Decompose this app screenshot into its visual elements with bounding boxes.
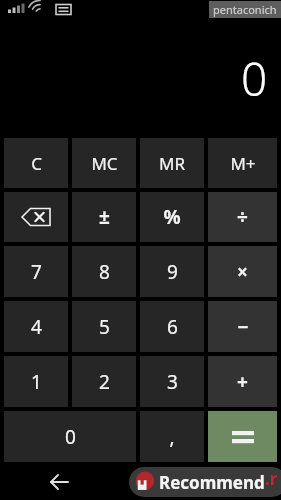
staticText: C	[31, 152, 42, 175]
button[interactable]: Backspace	[4, 192, 68, 242]
staticText: Recommend	[159, 471, 265, 494]
staticText: MC	[91, 152, 118, 175]
staticText: 6	[167, 314, 178, 340]
staticText: MR	[159, 152, 185, 175]
button[interactable]: MC	[72, 138, 136, 188]
staticText: M+	[230, 152, 256, 175]
staticText: −	[237, 314, 249, 340]
button[interactable]: ±	[72, 192, 136, 242]
button[interactable]: 2	[72, 356, 136, 407]
button[interactable]: 3	[140, 356, 204, 407]
button[interactable]: +	[208, 356, 277, 407]
button[interactable]: M+	[208, 138, 277, 188]
button[interactable]: 1	[4, 356, 68, 407]
button[interactable]: C	[4, 138, 68, 188]
staticText: 4	[31, 314, 42, 340]
staticText: 0	[241, 47, 268, 110]
button[interactable]: 5	[72, 301, 136, 352]
button[interactable]: MR	[140, 138, 204, 188]
button[interactable]: 4	[4, 301, 68, 352]
staticText: ±	[99, 204, 110, 230]
staticText: 7	[31, 259, 42, 285]
staticText: 3	[167, 369, 178, 395]
button[interactable]: 0	[4, 411, 136, 462]
button[interactable]: Back	[42, 465, 76, 499]
staticText: %	[163, 204, 181, 230]
button[interactable]: −	[208, 301, 277, 352]
staticText: ×	[237, 259, 248, 285]
staticText: 0	[65, 424, 76, 450]
staticText: .ru	[265, 467, 281, 497]
staticText: 9	[167, 259, 178, 285]
staticText: pentaconich	[213, 2, 277, 17]
staticText: 5	[99, 314, 110, 340]
button[interactable]: Search	[205, 465, 239, 499]
button[interactable]: 9	[140, 246, 204, 297]
button[interactable]: 6	[140, 301, 204, 352]
button[interactable]: ÷	[208, 192, 277, 242]
staticText: +	[237, 369, 248, 395]
button[interactable]: ×	[208, 246, 277, 297]
staticText: ÷	[237, 204, 248, 230]
staticText: ,	[169, 424, 175, 450]
button[interactable]: %	[140, 192, 204, 242]
button[interactable]: Equals	[208, 411, 277, 462]
staticText: 2	[99, 369, 110, 395]
button[interactable]: ,	[140, 411, 204, 462]
staticText: 1	[31, 369, 42, 395]
staticText: 8	[99, 259, 110, 285]
button[interactable]: 8	[72, 246, 136, 297]
button[interactable]: 7	[4, 246, 68, 297]
